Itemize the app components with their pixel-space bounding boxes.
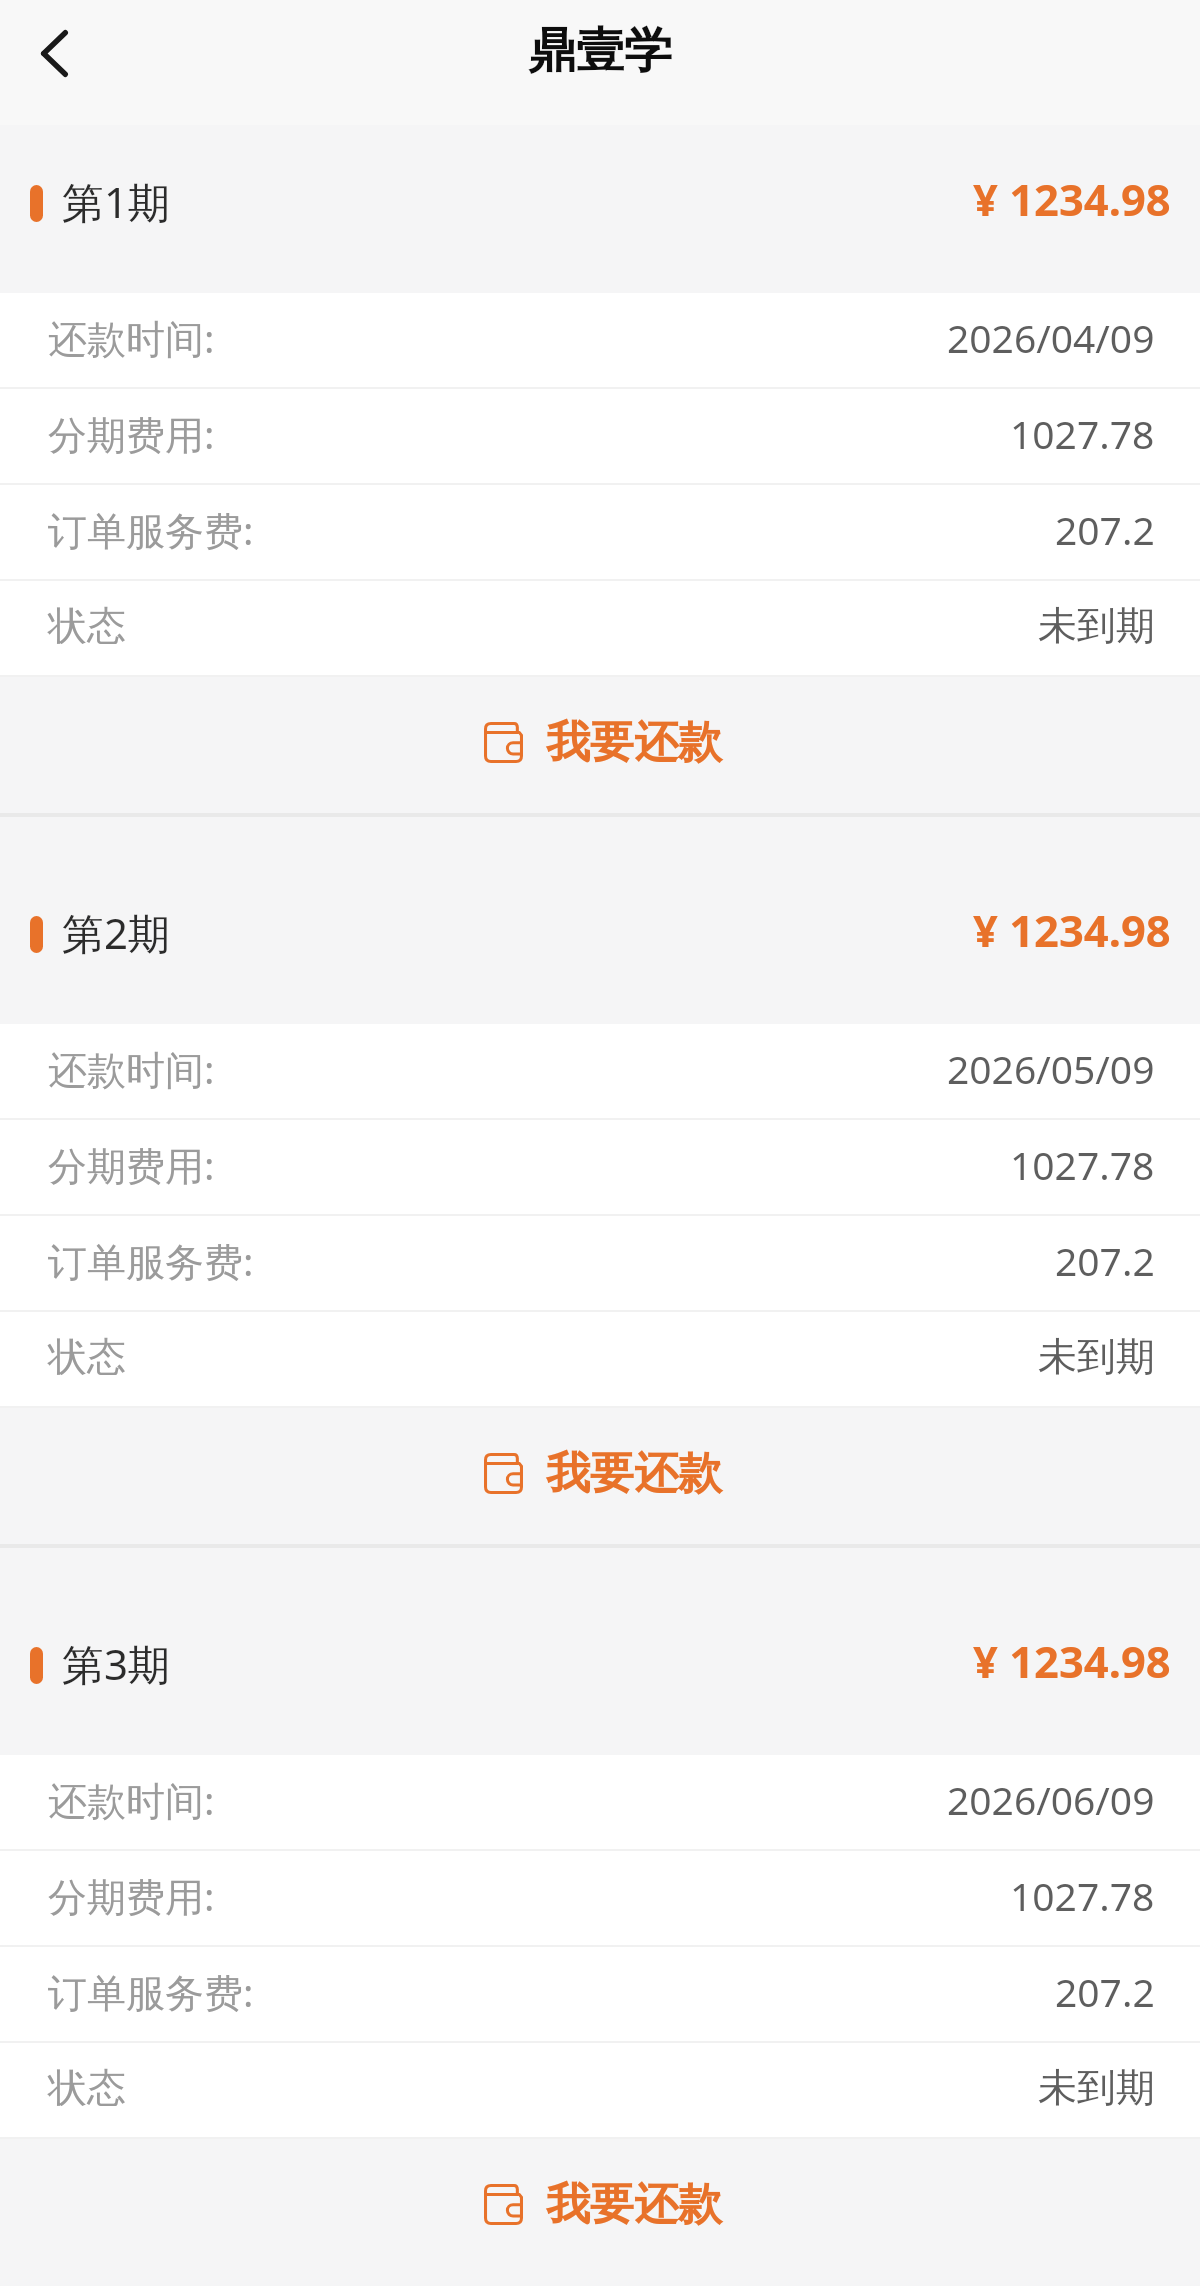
staticText: 我要还款	[546, 2177, 722, 2232]
staticText: 分期费用:	[48, 1869, 215, 1922]
staticText: 1027.78	[1010, 1138, 1155, 1191]
staticText: 订单服务费:	[48, 1965, 254, 2018]
button[interactable]: 我要还款	[0, 677, 1200, 813]
staticText: 还款时间:	[48, 1773, 215, 1826]
staticText: 我要还款	[546, 715, 722, 770]
staticText: 分期费用:	[48, 1138, 215, 1191]
staticText: 状态	[48, 601, 126, 650]
staticText: 1027.78	[1010, 1869, 1155, 1922]
staticText: 2026/04/09	[947, 311, 1155, 364]
staticText: 未到期	[1038, 601, 1155, 650]
staticText: 未到期	[1038, 1332, 1155, 1381]
staticText: ¥ 1234.98	[973, 1631, 1171, 1690]
button[interactable]: 我要还款	[0, 2139, 1200, 2275]
button[interactable]: Back	[14, 16, 94, 90]
button[interactable]: 第2期	[0, 856, 1200, 1024]
staticText: 第2期	[62, 904, 171, 961]
staticText: 还款时间:	[48, 311, 215, 364]
staticText: 1027.78	[1010, 407, 1155, 460]
staticText: 第1期	[62, 173, 171, 230]
staticText: 2026/06/09	[947, 1773, 1155, 1826]
staticText: ¥ 1234.98	[973, 169, 1171, 228]
button[interactable]: 第1期	[0, 125, 1200, 293]
staticText: 2026/05/09	[947, 1042, 1155, 1095]
button[interactable]: 第3期	[0, 1587, 1200, 1755]
staticText: 状态	[48, 2063, 126, 2112]
staticText: 鼎壹学	[528, 21, 672, 81]
staticText: ¥ 1234.98	[973, 900, 1171, 959]
staticText: 207.2	[1055, 503, 1155, 556]
staticText: 未到期	[1038, 2063, 1155, 2112]
staticText: 还款时间:	[48, 1042, 215, 1095]
staticText: 我要还款	[546, 1446, 722, 1501]
staticText: 状态	[48, 1332, 126, 1381]
staticText: 第3期	[62, 1635, 171, 1692]
staticText: 订单服务费:	[48, 503, 254, 556]
button[interactable]: 我要还款	[0, 1408, 1200, 1544]
staticText: 订单服务费:	[48, 1234, 254, 1287]
staticText: 207.2	[1055, 1234, 1155, 1287]
staticText: 分期费用:	[48, 407, 215, 460]
staticText: 207.2	[1055, 1965, 1155, 2018]
